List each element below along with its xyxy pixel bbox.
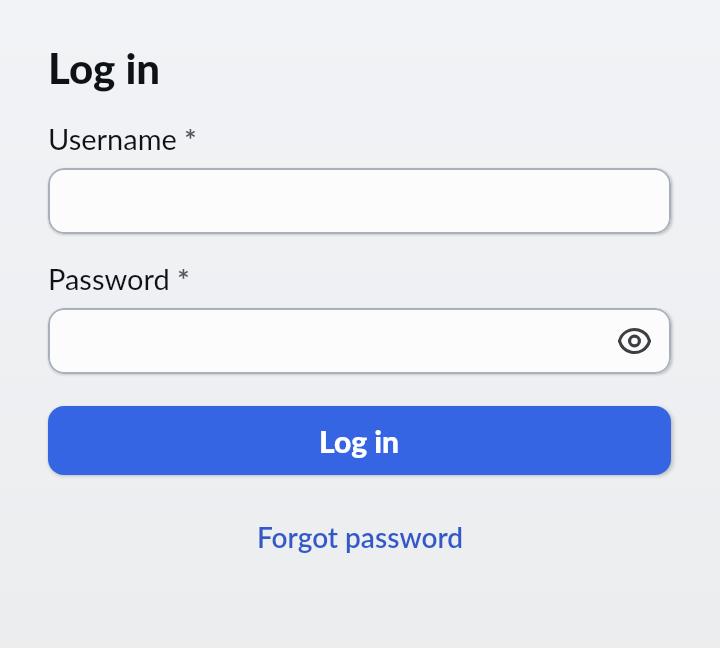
- staticText: Log in: [319, 423, 400, 459]
- button[interactable]: [48, 168, 671, 234]
- button[interactable]: [605, 312, 663, 370]
- button[interactable]: [48, 308, 671, 374]
- button[interactable]: Forgot password: [257, 520, 464, 554]
- staticText: Password *: [48, 261, 190, 296]
- staticText: Log in: [48, 43, 161, 93]
- staticText: Username *: [48, 121, 197, 156]
- button[interactable]: Log in: [48, 406, 671, 475]
